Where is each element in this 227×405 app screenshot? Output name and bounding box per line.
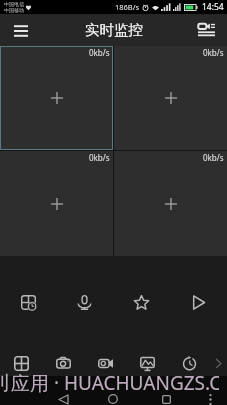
button[interactable]: Grid: [0, 345, 42, 381]
staticText: 0kb/s: [89, 47, 110, 58]
button[interactable]: Menu: [6, 15, 36, 45]
button[interactable]: Options: [199, 388, 221, 405]
staticText: 0kb/s: [203, 152, 224, 163]
button[interactable]: Play: [170, 279, 227, 325]
button[interactable]: Home: [102, 388, 124, 405]
staticText: 0kb/s: [89, 152, 110, 163]
button[interactable]: Snapshot: [42, 345, 84, 381]
button[interactable]: Record: [84, 345, 126, 381]
button[interactable]: Video channel: [114, 46, 227, 150]
button[interactable]: Camera list: [191, 15, 221, 45]
button[interactable]: Recents: [155, 388, 177, 405]
button[interactable]: More: [210, 345, 227, 381]
button[interactable]: History: [168, 345, 210, 381]
staticText: 中国电信: [4, 1, 24, 7]
staticText: 186B/s: [115, 2, 140, 12]
staticText: 14:54: [202, 1, 224, 13]
button[interactable]: Video channel: [0, 46, 113, 150]
staticText: 实时监控: [85, 21, 143, 39]
button[interactable]: Video channel: [114, 151, 227, 256]
button[interactable]: Gallery: [126, 345, 168, 381]
button[interactable]: Video channel: [0, 151, 113, 256]
button[interactable]: Back: [52, 388, 74, 405]
staticText: 0kb/s: [203, 47, 224, 58]
button[interactable]: Split screen: [0, 279, 56, 325]
staticText: 中国移动: [4, 7, 24, 13]
button[interactable]: Audio: [56, 279, 113, 325]
button[interactable]: Favorite: [113, 279, 170, 325]
staticText: 刂应用 · HUACHUANGZS.C: [0, 370, 219, 396]
